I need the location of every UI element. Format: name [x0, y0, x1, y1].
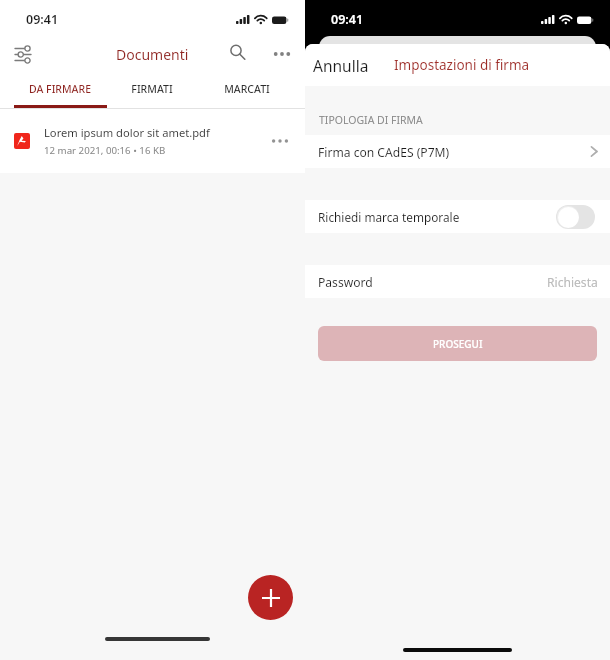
button[interactable]: Lorem ipsum dolor sit amet.pdf [0, 109, 305, 173]
button[interactable]: DA FIRMARE [14, 72, 106, 105]
button[interactable]: Aggiungi documento [248, 575, 293, 620]
staticText: Password [318, 274, 373, 290]
staticText: Annulla [313, 55, 369, 76]
staticText: DA FIRMARE [29, 82, 91, 96]
button[interactable]: PROSEGUI [318, 326, 597, 361]
staticText: FIRMATI [131, 82, 173, 96]
button[interactable]: Altro [267, 39, 297, 69]
staticText: 09:41 [26, 11, 59, 28]
staticText: Richiesta [547, 274, 598, 290]
staticText: 09:41 [331, 11, 364, 28]
button[interactable]: Password [305, 265, 610, 298]
button[interactable]: Firma con CAdES (P7M) [305, 135, 610, 168]
button[interactable]: MARCATI [201, 72, 293, 105]
button[interactable]: Cerca [224, 39, 254, 69]
staticText: Lorem ipsum dolor sit amet.pdf [44, 125, 210, 140]
button[interactable]: Richiedi marca temporale [556, 205, 595, 229]
staticText: Firma con CAdES (P7M) [318, 144, 450, 160]
button[interactable]: Annulla [309, 49, 373, 82]
staticText: MARCATI [224, 82, 270, 96]
button[interactable]: Filtri [8, 39, 38, 69]
button[interactable]: Opzioni documento [267, 128, 293, 154]
staticText: Documenti [116, 45, 189, 64]
staticText: TIPOLOGIA DI FIRMA [319, 113, 423, 127]
staticText: Richiedi marca temporale [318, 209, 460, 225]
staticText: 12 mar 2021, 00:16 • 16 KB [44, 144, 166, 157]
button[interactable]: FIRMATI [106, 72, 198, 105]
staticText: PROSEGUI [433, 337, 483, 351]
staticText: Impostazioni di firma [394, 56, 530, 74]
